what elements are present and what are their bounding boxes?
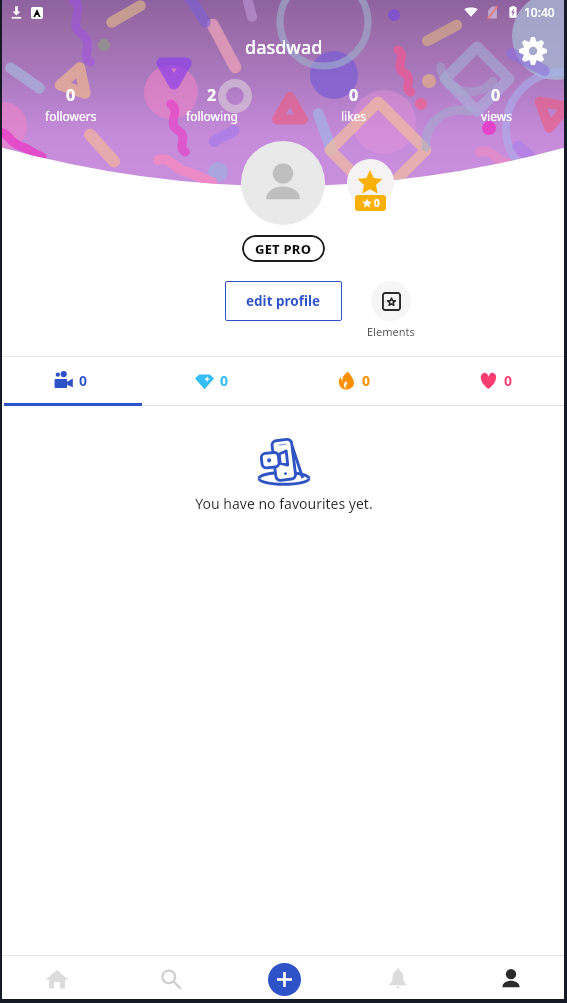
staticText: 10:40 (524, 4, 555, 20)
staticText: views (481, 108, 512, 124)
staticText: 0 (491, 84, 501, 106)
button[interactable]: Star level (347, 159, 394, 206)
button[interactable]: Create (268, 963, 301, 996)
staticText: 2 (207, 84, 217, 106)
staticText: edit profile (246, 292, 321, 310)
button[interactable]: Search (114, 955, 228, 1003)
button[interactable]: Profile (454, 955, 567, 1003)
staticText: You have no favourites yet. (195, 494, 373, 513)
button[interactable]: Profile photo (241, 141, 325, 225)
button[interactable]: Notifications (341, 955, 454, 1003)
button[interactable]: 0 (0, 357, 141, 403)
staticText: following (186, 108, 238, 124)
staticText: GET PRO (255, 240, 312, 258)
staticText: dasdwad (245, 35, 323, 60)
staticText: 0 (79, 371, 88, 390)
button[interactable]: Home (0, 955, 114, 1003)
button[interactable]: 0 (425, 84, 567, 124)
button[interactable]: 0 (425, 357, 567, 403)
staticText: likes (341, 108, 367, 124)
button[interactable]: Elements (361, 281, 421, 339)
staticText: 0 (220, 371, 229, 390)
staticText: 0 (504, 371, 513, 390)
button[interactable]: GET PRO (242, 235, 325, 262)
button[interactable]: 0 (283, 84, 425, 124)
staticText: 0 (66, 84, 76, 106)
button[interactable]: 0 (141, 357, 283, 403)
staticText: 0 (362, 371, 371, 390)
button[interactable]: 0 (0, 84, 141, 124)
staticText: followers (45, 108, 97, 124)
button[interactable]: edit profile (225, 281, 342, 321)
button[interactable]: Settings (519, 37, 547, 65)
staticText: 0 (349, 84, 359, 106)
staticText: 0 (374, 196, 380, 210)
button[interactable]: 2 (141, 84, 283, 124)
staticText: Elements (367, 324, 415, 339)
button[interactable]: 0 (283, 357, 425, 403)
